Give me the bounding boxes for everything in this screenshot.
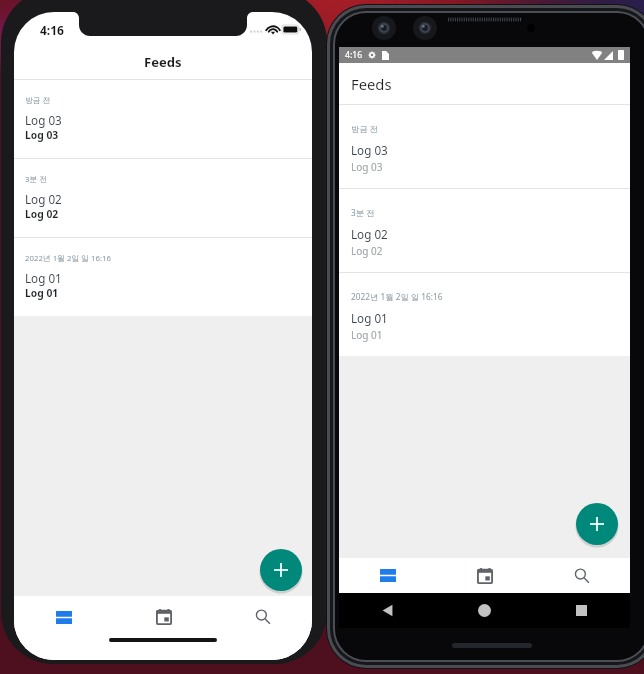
button[interactable]: Feeds [14,596,114,638]
button[interactable]: Calendar [436,558,533,593]
staticText: 2022년 1월 2일 일 16:16 [351,291,443,302]
button[interactable]: 방금 전 [14,80,312,158]
button[interactable]: Recents [533,593,630,628]
button[interactable]: 3분 전 [339,189,630,272]
button[interactable]: 3분 전 [14,159,312,237]
button[interactable]: 2022년 1월 2일 일 16:16 [339,273,630,356]
button[interactable]: Add feed [260,549,302,591]
staticText: 4:16 [345,49,363,61]
button[interactable]: 2022년 1월 2일 일 16:16 [14,238,312,316]
staticText: 3분 전 [351,207,375,218]
staticText: Log 01 [25,286,59,300]
staticText: Log 03 [25,128,59,142]
button[interactable]: Home [436,593,533,628]
staticText: Log 01 [351,328,383,342]
staticText: Log 03 [351,142,388,158]
button[interactable]: 방금 전 [339,105,630,188]
staticText: Log 03 [25,112,62,128]
staticText: 2022년 1월 2일 일 16:16 [25,253,111,264]
staticText: Feeds [351,74,392,94]
button[interactable]: Feeds [339,558,436,593]
staticText: Log 02 [351,226,388,242]
staticText: Log 01 [25,270,62,286]
staticText: Feeds [144,53,182,71]
staticText: 방금 전 [351,123,379,134]
button[interactable]: Add feed [576,503,618,545]
staticText: 4:16 [40,22,64,38]
button[interactable]: Search [213,596,312,638]
staticText: Log 02 [25,207,59,221]
staticText: 3분 전 [25,174,48,185]
staticText: Log 01 [351,310,388,326]
staticText: Log 02 [351,244,383,258]
button[interactable]: Back [339,593,436,628]
staticText: Log 02 [25,191,62,207]
button[interactable]: Search [533,558,630,593]
staticText: Log 03 [351,160,383,174]
staticText: 방금 전 [25,95,51,106]
button[interactable]: Calendar [114,596,213,638]
